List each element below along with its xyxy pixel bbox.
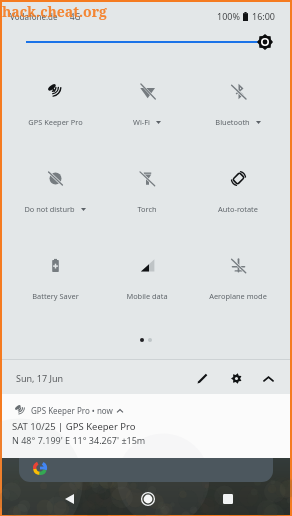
staticText: hack.cheat.org: [2, 2, 107, 21]
button[interactable]: Edit: [189, 365, 216, 392]
staticText: GPS Keeper Pro • now: [31, 405, 113, 416]
staticText: 100%: [217, 10, 240, 22]
button[interactable]: Bluetooth: [192, 71, 283, 158]
button[interactable]: Battery Saver: [9, 245, 101, 332]
staticText: Battery Saver: [32, 291, 79, 301]
button[interactable]: Auto-rotate: [192, 158, 283, 245]
button[interactable]: Back: [56, 486, 82, 512]
button[interactable]: Do not disturb: [9, 158, 101, 245]
staticText: Aeroplane mode: [209, 291, 267, 301]
staticText: SAT 10/25 | GPS Keeper Pro: [12, 420, 136, 433]
staticText: 16:00: [252, 10, 276, 22]
staticText: GPS Keeper Pro: [28, 117, 83, 127]
button[interactable]: Recents: [215, 486, 241, 512]
button[interactable]: Wi-Fi: [101, 71, 192, 158]
staticText: Auto-rotate: [218, 204, 258, 214]
button[interactable]: Aeroplane mode: [192, 245, 283, 332]
staticText: Sun, 17 Jun: [16, 372, 64, 384]
button[interactable]: Settings: [223, 365, 250, 392]
button[interactable]: Search: [19, 458, 273, 482]
button[interactable]: Home: [135, 486, 161, 512]
staticText: Do not disturb: [24, 204, 75, 214]
button[interactable]: GPS Keeper Pro: [9, 71, 101, 158]
button[interactable]: Torch: [101, 158, 192, 245]
staticText: 4G: [70, 11, 81, 22]
staticText: Bluetooth: [215, 117, 250, 127]
staticText: Torch: [137, 204, 157, 214]
staticText: Vodafone.de: [10, 11, 58, 22]
staticText: Wi-Fi: [133, 117, 150, 127]
staticText: N 48° 7.199' E 11° 34.267' ±15m: [12, 434, 146, 446]
staticText: Mobile data: [126, 291, 168, 301]
button[interactable]: Collapse: [255, 365, 282, 392]
button[interactable]: Mobile data: [101, 245, 192, 332]
